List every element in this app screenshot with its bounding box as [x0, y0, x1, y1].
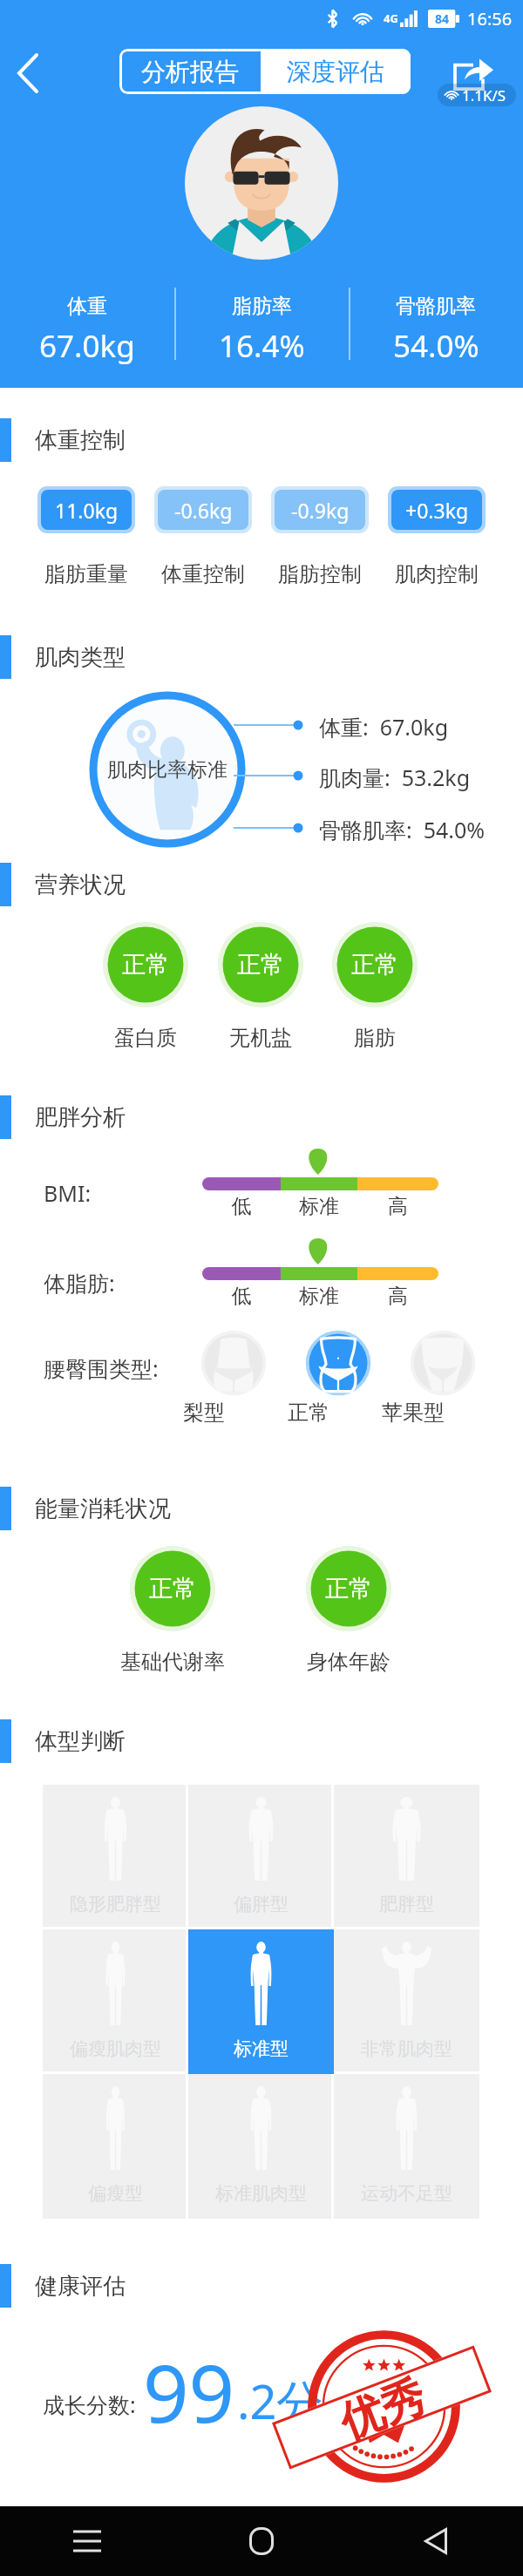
staticText: 标准型 — [188, 2037, 334, 2060]
staticText: 健康评估 — [35, 2272, 126, 2301]
button[interactable]: Back — [349, 2506, 523, 2576]
staticText: 正常 — [237, 950, 284, 980]
staticText: .2分 — [237, 2369, 324, 2433]
button[interactable]: 11.0kg — [41, 490, 132, 530]
staticText: 16.4% — [219, 325, 305, 367]
staticText: 偏瘦肌肉型 — [43, 2037, 188, 2060]
staticText: -0.6kg — [174, 497, 233, 524]
button[interactable]: 苹果型 — [410, 1330, 476, 1427]
staticText: 偏瘦型 — [43, 2182, 188, 2205]
button[interactable]: 肥胖型 — [334, 1785, 479, 1929]
staticText: 54.0% — [393, 325, 479, 367]
staticText: 67.0kg — [39, 325, 135, 367]
button[interactable]: 正常 — [306, 1546, 391, 1631]
staticText: 偏胖型 — [188, 1893, 334, 1915]
staticText: 4G — [384, 10, 398, 26]
button[interactable]: 隐形肥胖型 — [43, 1785, 188, 1929]
button[interactable]: 偏瘦肌肉型 — [43, 1929, 188, 2074]
staticText: 低 — [202, 1284, 281, 1309]
staticText: 体重 — [67, 294, 107, 319]
staticText: 正常 — [325, 1574, 372, 1603]
staticText: 正常 — [351, 950, 398, 980]
staticText: 高 — [357, 1284, 438, 1309]
button[interactable]: 深度评估 — [261, 49, 411, 94]
button[interactable]: 偏胖型 — [188, 1785, 334, 1929]
button[interactable]: Home — [174, 2506, 349, 2576]
staticText: 体型判断 — [35, 1727, 126, 1756]
staticText: 1.1K/S — [462, 85, 506, 105]
staticText: 运动不足型 — [334, 2182, 479, 2205]
staticText: 脂肪率 — [232, 294, 292, 319]
staticText: 脂肪重量 — [37, 561, 135, 587]
button[interactable]: 正常 — [130, 1546, 215, 1631]
staticText: 深度评估 — [287, 57, 384, 87]
staticText: 体重控制 — [35, 426, 126, 455]
button[interactable]: Share — [440, 48, 519, 109]
staticText: BMI: — [44, 1178, 92, 1208]
staticText: 肥胖型 — [334, 1893, 479, 1915]
button[interactable]: 正常 — [103, 922, 188, 1007]
staticText: -0.9kg — [291, 497, 350, 524]
staticText: 16:56 — [467, 7, 513, 31]
staticText: 优秀 — [332, 2369, 431, 2446]
staticText: 营养状况 — [35, 871, 126, 899]
staticText: 正常 — [275, 1400, 342, 1426]
staticText: 体重控制 — [154, 561, 252, 587]
staticText: 肌肉比率标准 — [107, 757, 228, 783]
staticText: 高 — [357, 1194, 438, 1219]
staticText: 脂肪控制 — [271, 561, 369, 587]
button[interactable]: 非常肌肉型 — [334, 1929, 479, 2074]
button[interactable]: 梨型 — [200, 1330, 267, 1427]
staticText: 正常 — [149, 1574, 196, 1603]
staticText: 骨骼肌率: 54.0% — [319, 815, 486, 844]
button[interactable]: 运动不足型 — [334, 2074, 479, 2219]
staticText: 标准 — [281, 1284, 357, 1309]
staticText: 能量消耗状况 — [35, 1495, 171, 1523]
staticText: 99 — [143, 2337, 235, 2446]
staticText: 标准 — [281, 1194, 357, 1219]
button[interactable]: +0.3kg — [391, 490, 482, 530]
staticText: 标准肌肉型 — [188, 2182, 334, 2205]
staticText: 体脂肪: — [44, 1268, 115, 1298]
staticText: 非常肌肉型 — [334, 2037, 479, 2060]
staticText: +0.3kg — [405, 497, 469, 524]
button[interactable]: 正常 — [305, 1330, 371, 1427]
button[interactable]: 分析报告 — [119, 49, 261, 94]
button[interactable]: 偏瘦型 — [43, 2074, 188, 2219]
staticText: 肌肉量: 53.2kg — [319, 763, 471, 792]
staticText: 蛋白质 — [76, 1025, 215, 1051]
staticText: 肌肉控制 — [388, 561, 486, 587]
staticText: 11.0kg — [55, 497, 119, 524]
staticText: 脂肪 — [305, 1025, 445, 1051]
button[interactable]: Menu — [0, 2506, 174, 2576]
staticText: 肥胖分析 — [35, 1103, 126, 1132]
staticText: 腰臀围类型: — [44, 1353, 159, 1383]
button[interactable]: -0.6kg — [158, 490, 248, 530]
button[interactable]: 正常 — [218, 922, 303, 1007]
staticText: 低 — [202, 1194, 281, 1219]
staticText: 正常 — [122, 950, 169, 980]
button[interactable]: -0.9kg — [275, 490, 365, 530]
staticText: 成长分数: — [43, 2390, 136, 2419]
staticText: 无机盐 — [191, 1025, 330, 1051]
staticText: 84 — [435, 10, 450, 27]
button[interactable]: Back — [3, 49, 52, 98]
staticText: 体重: 67.0kg — [319, 712, 449, 742]
staticText: 梨型 — [171, 1400, 237, 1426]
staticText: 隐形肥胖型 — [43, 1893, 188, 1915]
staticText: 苹果型 — [380, 1400, 446, 1426]
button[interactable]: 标准肌肉型 — [188, 2074, 334, 2219]
staticText: 骨骼肌率 — [396, 294, 476, 319]
staticText: 分析报告 — [141, 57, 239, 87]
button[interactable]: 标准型 — [188, 1929, 334, 2074]
button[interactable]: 正常 — [332, 922, 418, 1007]
staticText: 肌肉类型 — [35, 643, 126, 672]
staticText: 基础代谢率 — [103, 1649, 242, 1675]
staticText: 身体年龄 — [279, 1649, 418, 1675]
